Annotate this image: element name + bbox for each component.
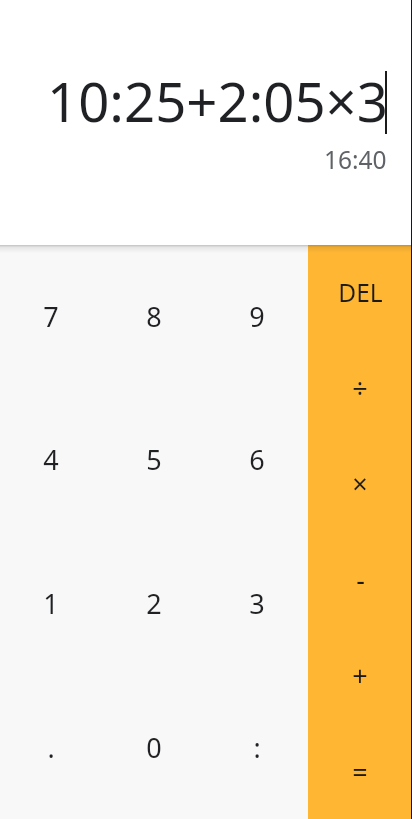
button[interactable]: 9 (205, 245, 308, 388)
button[interactable]: Delete (308, 245, 412, 340)
button[interactable]: 6 (205, 388, 308, 531)
staticText: 1 (43, 585, 59, 622)
button[interactable]: Equals (308, 723, 412, 819)
staticText: 5 (146, 441, 162, 478)
button[interactable]: Subtract (308, 531, 412, 627)
staticText: 2 (146, 585, 162, 622)
staticText: 7 (43, 298, 59, 335)
staticText: 0 (146, 729, 162, 766)
button[interactable]: 7 (0, 245, 102, 388)
staticText: DEL (338, 276, 383, 309)
staticText: ÷ (352, 369, 368, 406)
button[interactable]: 2 (102, 531, 205, 675)
staticText: + (352, 657, 368, 694)
button[interactable]: 8 (102, 245, 205, 388)
button[interactable]: 10:25+2:05×3 (0, 0, 412, 245)
button[interactable]: : (205, 675, 308, 819)
staticText: 8 (146, 298, 162, 335)
button[interactable]: 0 (102, 675, 205, 819)
button[interactable]: 4 (0, 388, 102, 531)
staticText: 16:40 (324, 143, 387, 176)
staticText: 6 (249, 441, 265, 478)
button[interactable]: 1 (0, 531, 102, 675)
staticText: 9 (249, 298, 265, 335)
button[interactable]: Divide (308, 340, 412, 435)
staticText: - (356, 561, 365, 598)
staticText: = (352, 753, 368, 790)
button[interactable]: 5 (102, 388, 205, 531)
button[interactable]: 3 (205, 531, 308, 675)
staticText: 3 (249, 585, 265, 622)
staticText: 10:25+2:05×3 (47, 64, 388, 138)
staticText: 4 (43, 441, 59, 478)
staticText: : (253, 729, 261, 766)
button[interactable]: Multiply (308, 435, 412, 531)
button[interactable]: Add (308, 627, 412, 723)
staticText: . (47, 729, 55, 766)
staticText: × (352, 465, 368, 502)
button[interactable]: . (0, 675, 102, 819)
